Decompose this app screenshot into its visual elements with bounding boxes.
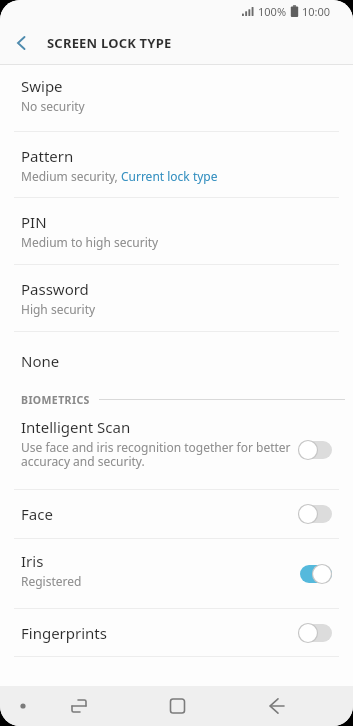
staticText: Face — [21, 504, 53, 524]
button[interactable]: Iris — [0, 539, 353, 608]
staticText: Fingerprints — [21, 623, 107, 643]
button[interactable] — [117, 686, 235, 726]
staticText: Medium security, Current lock type — [21, 168, 218, 184]
staticText: Intelligent Scan — [21, 417, 131, 437]
button[interactable] — [235, 686, 353, 726]
button[interactable]: None — [0, 332, 353, 389]
button[interactable]: Password — [0, 265, 353, 331]
staticText: 100% — [258, 4, 287, 19]
button[interactable]: Pattern — [0, 132, 353, 197]
staticText: Pattern — [21, 146, 74, 166]
staticText: Registered — [21, 573, 82, 589]
staticText: 10:00 — [302, 4, 331, 19]
staticText: Iris — [21, 551, 44, 571]
button[interactable]: Face — [0, 490, 353, 538]
staticText: Swipe — [21, 76, 63, 96]
staticText: SCREEN LOCK TYPE — [47, 34, 172, 52]
staticText: PIN — [21, 212, 47, 232]
button[interactable]: Fingerprints — [0, 609, 353, 656]
button[interactable] — [0, 686, 117, 726]
button[interactable]: Swipe — [0, 65, 353, 131]
staticText: BIOMETRICS — [21, 393, 90, 407]
staticText: Use face and iris recognition together f… — [21, 439, 295, 470]
button[interactable]: Intelligent Scan — [0, 410, 353, 489]
staticText: No security — [21, 98, 85, 114]
button[interactable] — [0, 22, 42, 64]
staticText: Medium to high security — [21, 234, 159, 250]
button[interactable]: PIN — [0, 198, 353, 264]
staticText: Password — [21, 279, 89, 299]
staticText: High security — [21, 301, 96, 317]
staticText: None — [21, 351, 60, 371]
